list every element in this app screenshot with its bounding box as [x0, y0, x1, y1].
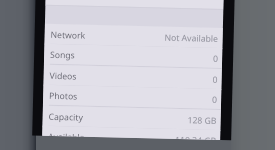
staticText: 0: [212, 94, 217, 106]
button[interactable]: Videos: [43, 65, 222, 90]
button[interactable]: Photos: [43, 85, 221, 110]
staticText: Capacity: [48, 111, 84, 124]
button[interactable]: Capacity: [42, 106, 221, 131]
staticText: Songs: [50, 49, 75, 61]
staticText: 119.34 GB: [175, 134, 216, 140]
staticText: Available: [48, 131, 85, 137]
staticText: 0: [213, 53, 218, 65]
button[interactable]: Songs: [44, 44, 222, 69]
staticText: Not Available: [164, 32, 219, 45]
staticText: Videos: [49, 70, 77, 83]
staticText: 128 GB: [187, 114, 217, 127]
staticText: Network: [50, 29, 86, 42]
button[interactable]: Available: [42, 126, 220, 140]
staticText: 0: [212, 74, 218, 86]
staticText: Photos: [49, 90, 78, 103]
button[interactable]: Network: [44, 24, 223, 49]
